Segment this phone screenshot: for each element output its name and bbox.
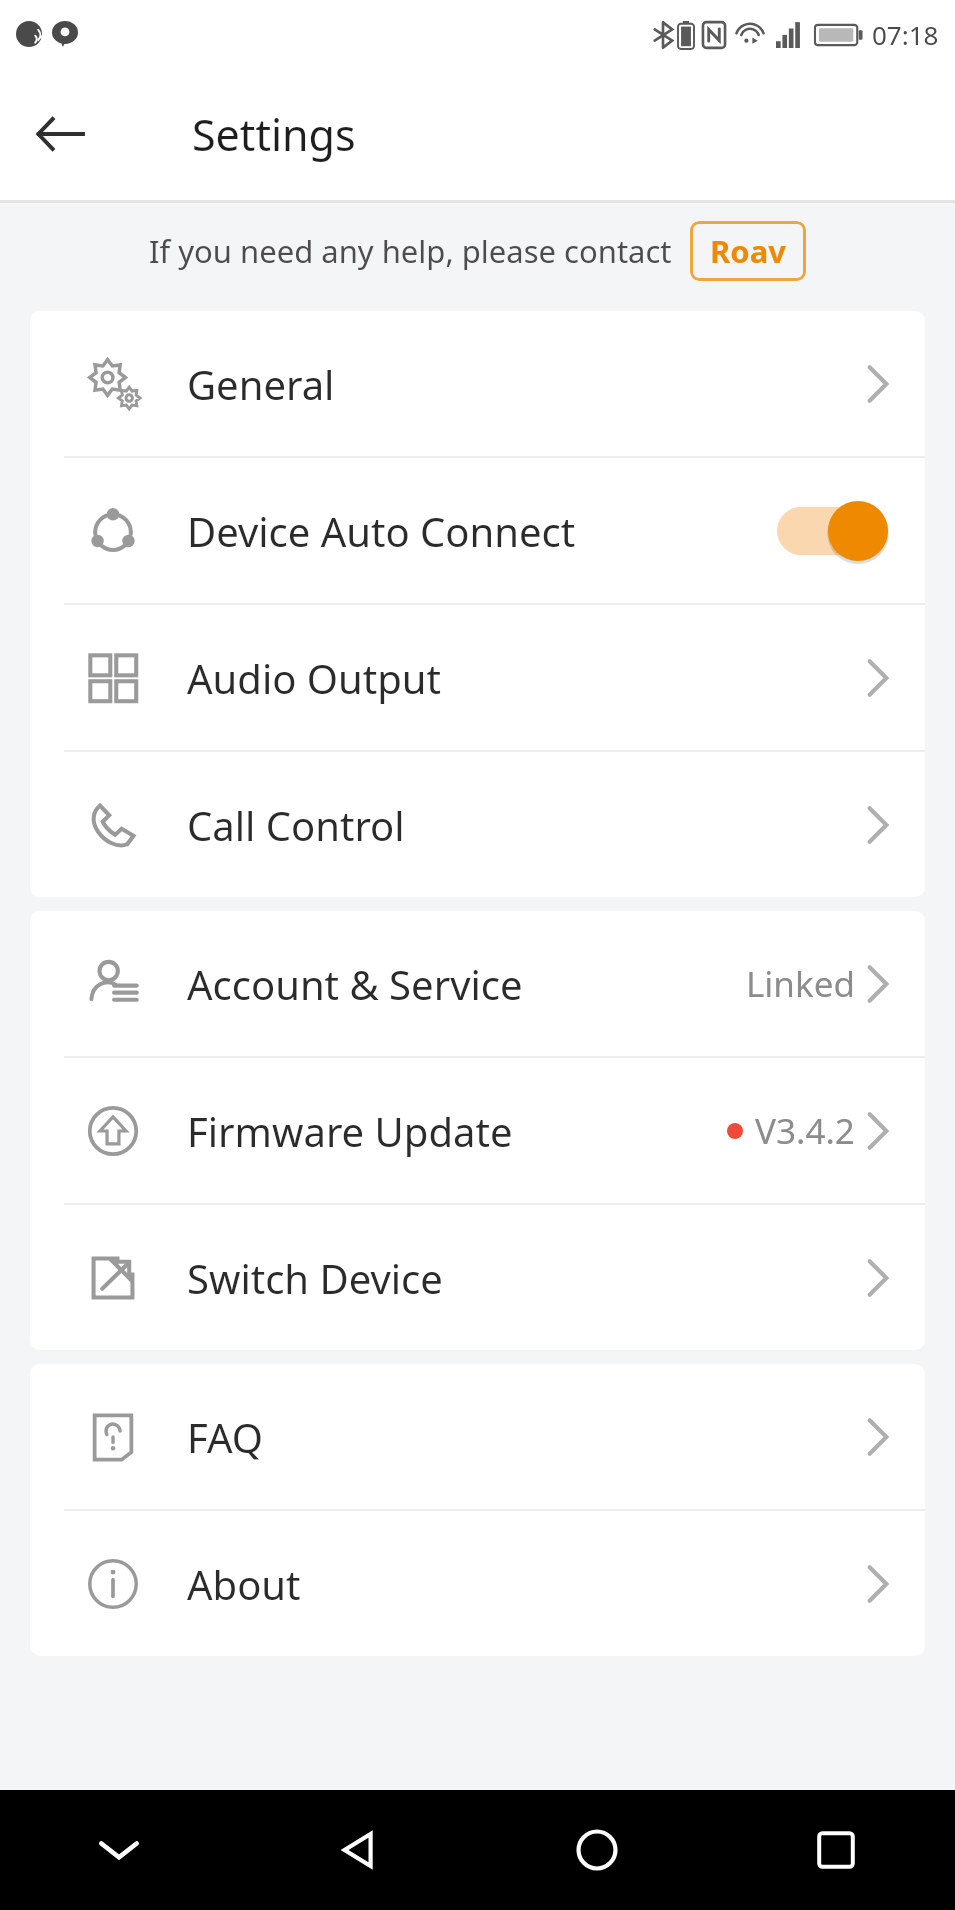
staticText: Account & Service (187, 957, 523, 1011)
staticText: Call Control (187, 798, 405, 852)
staticText: General (187, 357, 335, 411)
staticText: About (187, 1557, 301, 1611)
button[interactable]: General (30, 311, 925, 456)
button[interactable]: Call Control (30, 752, 925, 897)
button[interactable]: Device Auto Connect (30, 458, 925, 603)
staticText: Roav (710, 230, 786, 272)
staticText: Audio Output (187, 651, 441, 705)
staticText: If you need any help, please contact (149, 230, 672, 272)
staticText: Firmware Update (187, 1104, 513, 1158)
staticText: V3.4.2 (755, 1107, 855, 1155)
button[interactable]: Back (22, 96, 98, 172)
button[interactable]: Roav (690, 221, 806, 281)
staticText: Settings (192, 105, 356, 164)
staticText: Linked (746, 960, 855, 1008)
button[interactable]: About (30, 1511, 925, 1656)
button[interactable]: Firmware Update (30, 1058, 925, 1203)
staticText: Device Auto Connect (187, 504, 576, 558)
button[interactable]: Hide keyboard (0, 1790, 238, 1910)
button[interactable]: Switch Device (30, 1205, 925, 1350)
button[interactable]: Back (238, 1790, 477, 1910)
button[interactable]: FAQ (30, 1364, 925, 1509)
button[interactable]: Audio Output (30, 605, 925, 750)
button[interactable]: Account & Service (30, 911, 925, 1056)
staticText: Switch Device (187, 1251, 443, 1305)
staticText: FAQ (187, 1410, 263, 1464)
staticText: 07:18 (872, 17, 939, 52)
button[interactable]: Home (477, 1790, 716, 1910)
button[interactable]: Recent apps (716, 1790, 955, 1910)
